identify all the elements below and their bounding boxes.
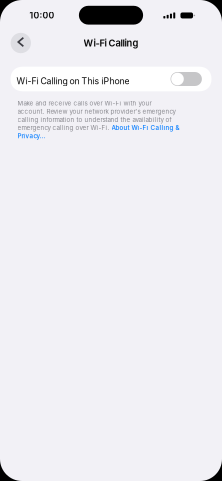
button[interactable]: Back: [8, 30, 34, 56]
staticText: calling information to understand the av…: [17, 116, 171, 123]
staticText: Wi-Fi Calling on This iPhone: [16, 76, 129, 86]
staticText: About Wi-Fi Calling &: [111, 124, 179, 132]
staticText: Make and receive calls over Wi-Fi with y…: [17, 99, 151, 107]
staticText: account. Review your network provider's …: [17, 108, 175, 115]
button[interactable]: Wi-Fi Calling on This iPhone: [10, 67, 211, 91]
staticText: 10:00: [29, 10, 54, 21]
staticText: Privacy...: [17, 132, 45, 140]
staticText: Wi-Fi Calling: [83, 37, 138, 49]
staticText: emergency calling over Wi-Fi.: [17, 124, 111, 132]
